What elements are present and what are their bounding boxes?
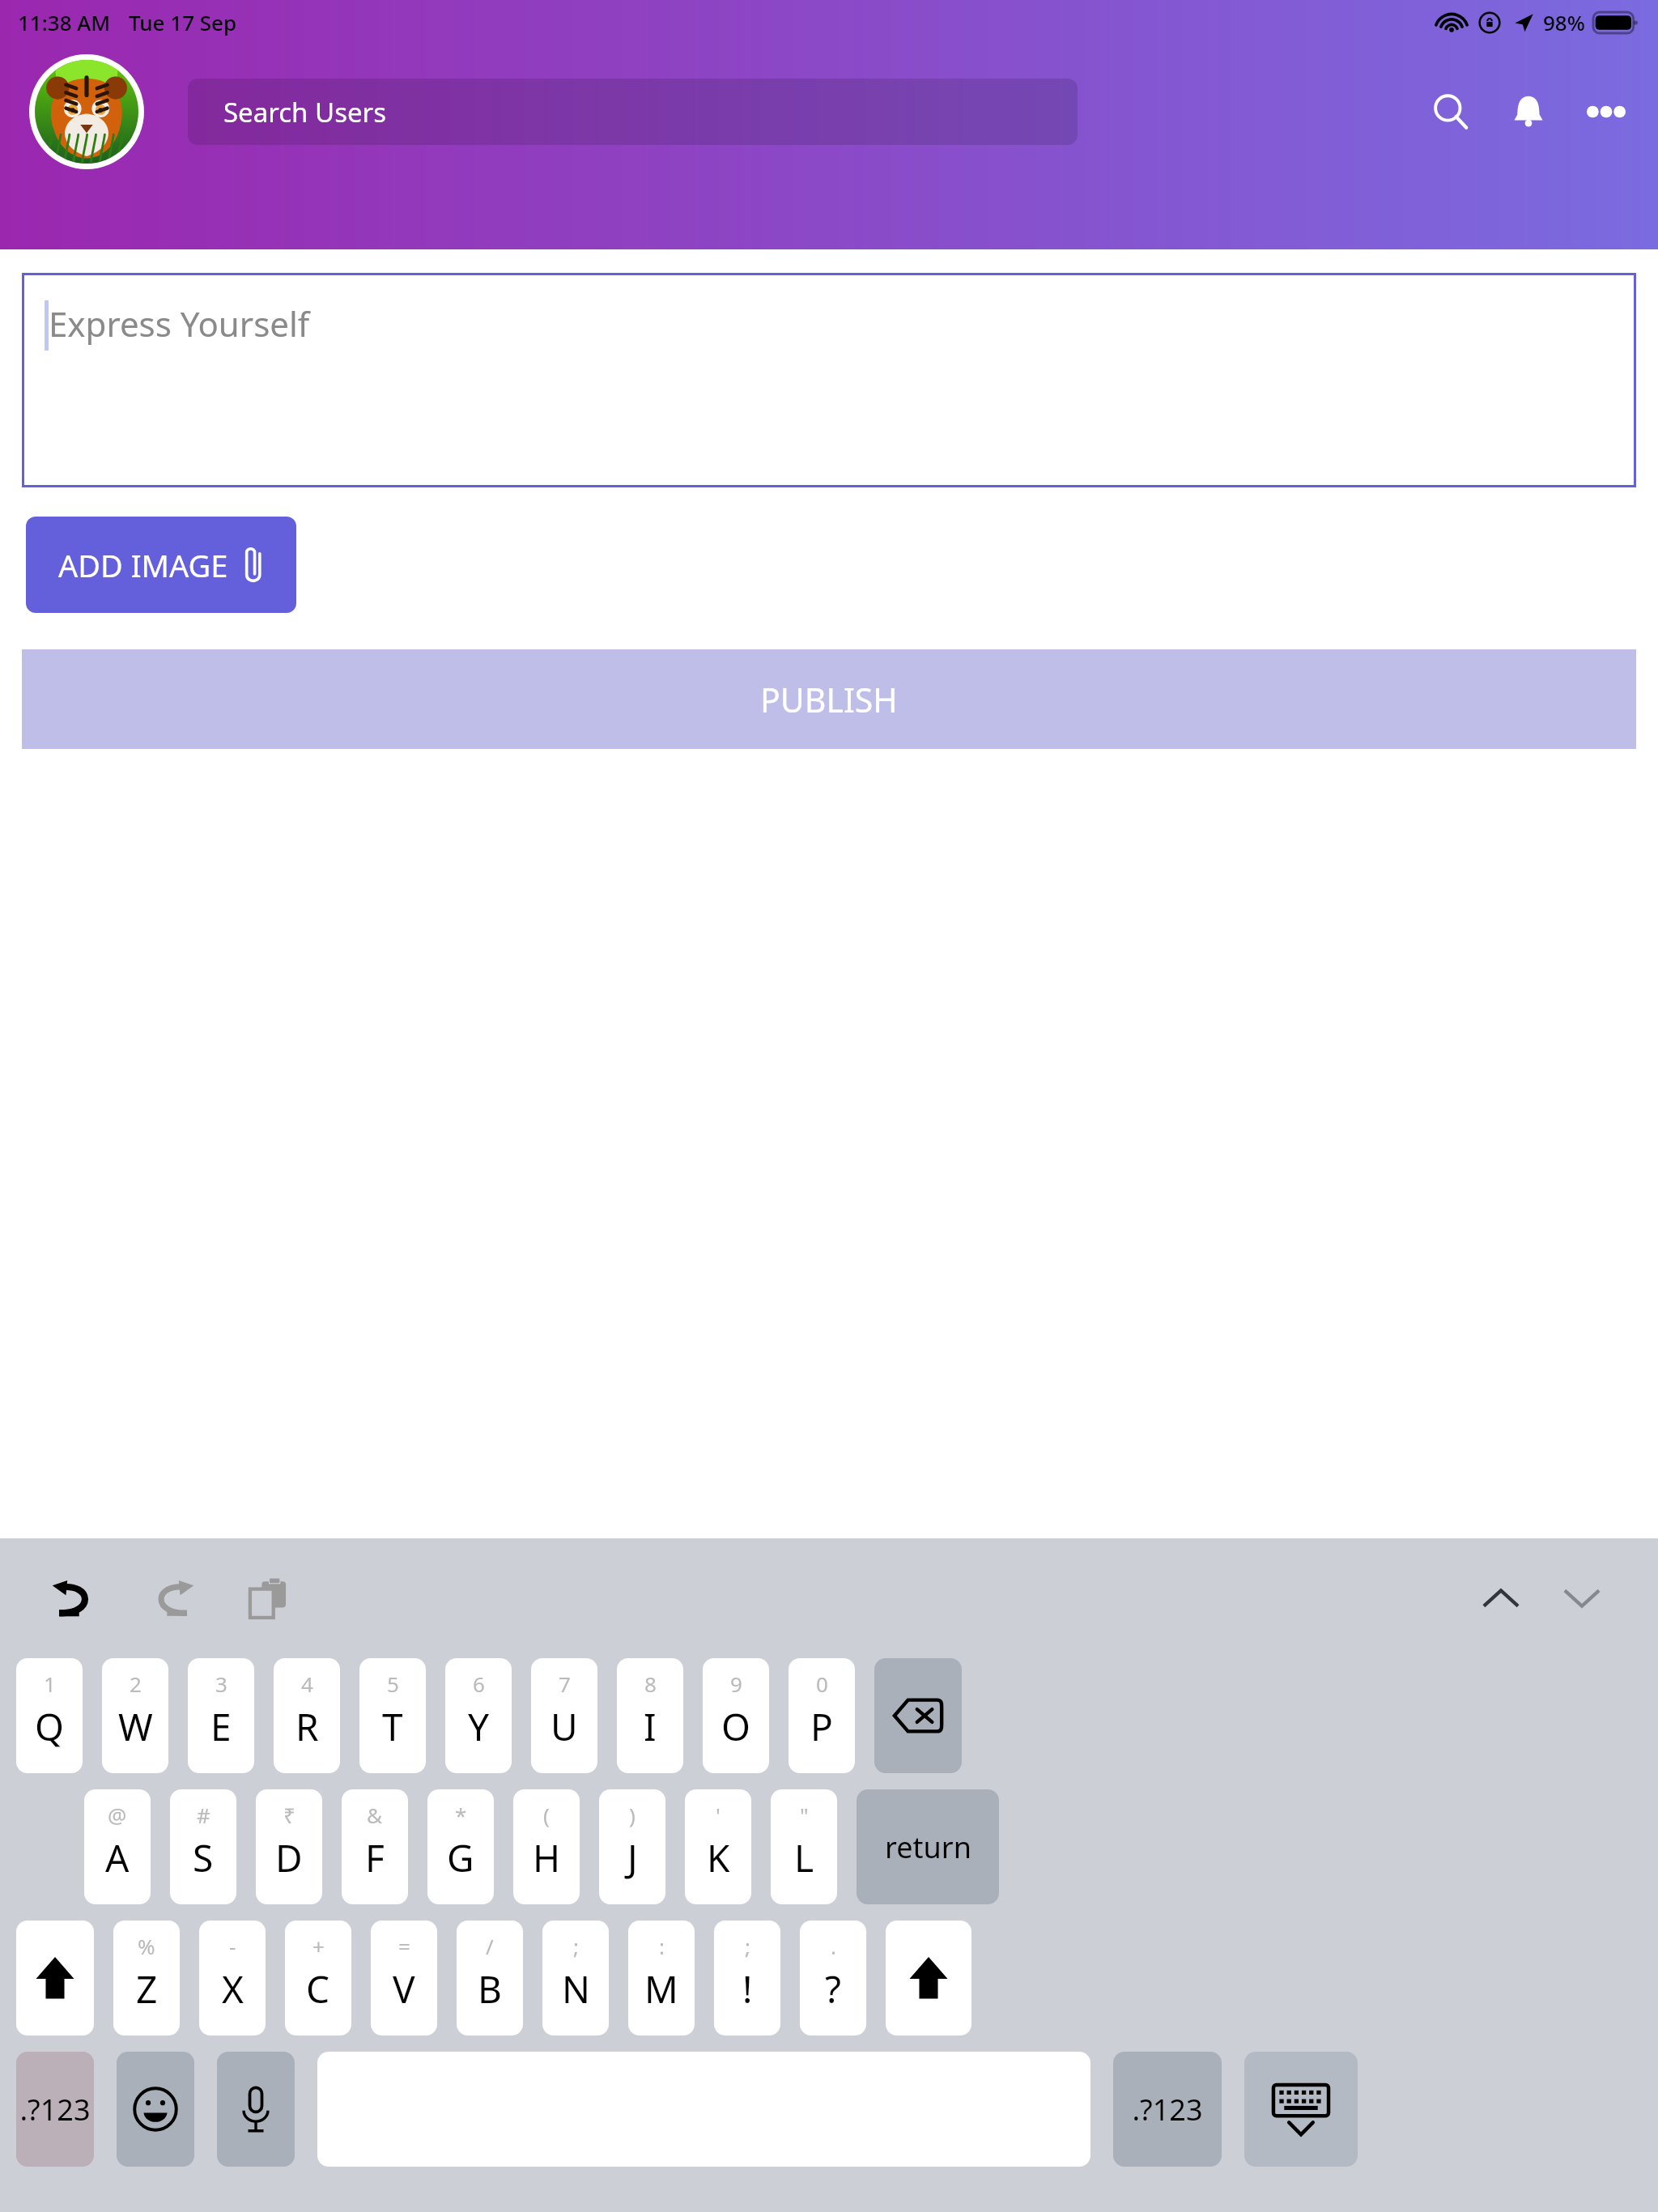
button[interactable]: Redo bbox=[144, 1570, 201, 1627]
button[interactable]: % bbox=[113, 1921, 180, 2035]
staticText: W bbox=[118, 1701, 153, 1752]
button[interactable]: 2 bbox=[102, 1658, 168, 1773]
button[interactable]: 9 bbox=[703, 1658, 769, 1773]
staticText: ' bbox=[716, 1801, 721, 1829]
staticText: ! bbox=[742, 1963, 753, 2014]
button[interactable]: More options bbox=[1571, 76, 1642, 147]
button[interactable]: Next bbox=[1551, 1568, 1613, 1629]
button[interactable]: bksp bbox=[874, 1658, 962, 1773]
button[interactable]: Previous bbox=[1470, 1568, 1532, 1629]
button[interactable]: kbd bbox=[1244, 2052, 1358, 2167]
staticText: 2 bbox=[130, 1670, 142, 1698]
button[interactable]: 5 bbox=[359, 1658, 426, 1773]
staticText: 11:38 AM bbox=[18, 8, 111, 36]
staticText: O bbox=[721, 1701, 750, 1752]
staticText: S bbox=[193, 1832, 214, 1883]
button[interactable]: Search bbox=[1415, 76, 1486, 147]
staticText: ; bbox=[573, 1932, 579, 1960]
staticText: PUBLISH bbox=[760, 677, 898, 722]
button[interactable]: 6 bbox=[445, 1658, 512, 1773]
button[interactable]: : bbox=[628, 1921, 695, 2035]
staticText: U bbox=[551, 1701, 578, 1752]
staticText: P bbox=[810, 1701, 833, 1752]
staticText: return bbox=[885, 1827, 971, 1867]
button[interactable]: emoji bbox=[117, 2052, 194, 2167]
button[interactable]: Express Yourself bbox=[22, 273, 1636, 487]
staticText: Express Yourself bbox=[49, 300, 310, 347]
button[interactable]: " bbox=[771, 1789, 837, 1904]
button[interactable]: + bbox=[285, 1921, 351, 2035]
button[interactable]: .?123 bbox=[1113, 2052, 1222, 2167]
staticText: ( bbox=[543, 1801, 550, 1829]
staticText: N bbox=[562, 1963, 590, 2014]
staticText: G bbox=[447, 1832, 474, 1883]
button[interactable]: = bbox=[371, 1921, 437, 2035]
staticText: ) bbox=[629, 1801, 636, 1829]
staticText: @ bbox=[108, 1801, 127, 1829]
staticText: V bbox=[393, 1963, 415, 2014]
button[interactable]: - bbox=[199, 1921, 266, 2035]
button[interactable]: / bbox=[457, 1921, 523, 2035]
staticText: 8 bbox=[644, 1670, 657, 1698]
staticText: 6 bbox=[473, 1670, 485, 1698]
button[interactable]: 7 bbox=[531, 1658, 597, 1773]
button[interactable]: return bbox=[857, 1789, 999, 1904]
button[interactable]: ( bbox=[513, 1789, 580, 1904]
button[interactable]: Undo bbox=[45, 1570, 102, 1627]
button[interactable]: @ bbox=[84, 1789, 151, 1904]
staticText: % bbox=[138, 1932, 155, 1960]
staticText: X bbox=[222, 1963, 244, 2014]
staticText: Q bbox=[35, 1701, 64, 1752]
staticText: E bbox=[210, 1701, 232, 1752]
staticText: * bbox=[455, 1801, 467, 1829]
button[interactable]: Profile bbox=[29, 54, 144, 169]
staticText: Tue 17 Sep bbox=[129, 8, 237, 36]
button[interactable]: 4 bbox=[274, 1658, 340, 1773]
button[interactable]: PUBLISH bbox=[22, 649, 1636, 749]
staticText: D bbox=[275, 1832, 303, 1883]
staticText: T bbox=[382, 1701, 403, 1752]
staticText: .?123 bbox=[1132, 2090, 1203, 2129]
staticText: Z bbox=[136, 1963, 158, 2014]
button[interactable]: 3 bbox=[188, 1658, 254, 1773]
staticText: H bbox=[533, 1832, 561, 1883]
button[interactable]: Search Users bbox=[188, 79, 1078, 145]
staticText: ; bbox=[745, 1932, 750, 1960]
staticText: ₹ bbox=[283, 1801, 295, 1829]
staticText: B bbox=[478, 1963, 502, 2014]
staticText: F bbox=[365, 1832, 385, 1883]
button[interactable]: # bbox=[170, 1789, 236, 1904]
button[interactable]: ) bbox=[599, 1789, 665, 1904]
staticText: K bbox=[707, 1832, 730, 1883]
button[interactable]: 0 bbox=[789, 1658, 855, 1773]
button[interactable]: ' bbox=[685, 1789, 751, 1904]
button[interactable]: * bbox=[427, 1789, 494, 1904]
button[interactable]: .?123 bbox=[16, 2052, 94, 2167]
staticText: . bbox=[831, 1932, 836, 1960]
staticText: C bbox=[306, 1963, 330, 2014]
button[interactable]: & bbox=[342, 1789, 408, 1904]
button[interactable]: ₹ bbox=[256, 1789, 322, 1904]
button[interactable]: . bbox=[800, 1921, 866, 2035]
button[interactable]: mic bbox=[217, 2052, 295, 2167]
button[interactable]: ADD IMAGE bbox=[26, 517, 296, 613]
staticText: 98% bbox=[1543, 8, 1585, 36]
button[interactable]: 1 bbox=[16, 1658, 83, 1773]
button[interactable]: ; bbox=[714, 1921, 780, 2035]
staticText: A bbox=[105, 1832, 130, 1883]
button[interactable]: 8 bbox=[617, 1658, 683, 1773]
button[interactable]: shift bbox=[16, 1921, 94, 2035]
staticText: 4 bbox=[301, 1670, 313, 1698]
button[interactable]: ; bbox=[542, 1921, 609, 2035]
staticText: / bbox=[486, 1932, 494, 1960]
staticText: ADD IMAGE bbox=[58, 544, 228, 586]
staticText: J bbox=[627, 1832, 638, 1883]
button[interactable]: shift bbox=[886, 1921, 971, 2035]
button[interactable]: Paste bbox=[240, 1570, 296, 1627]
staticText: 3 bbox=[215, 1670, 227, 1698]
staticText: & bbox=[367, 1801, 383, 1829]
staticText: 7 bbox=[559, 1670, 571, 1698]
button[interactable]: Notifications bbox=[1493, 76, 1564, 147]
staticText: : bbox=[659, 1932, 665, 1960]
